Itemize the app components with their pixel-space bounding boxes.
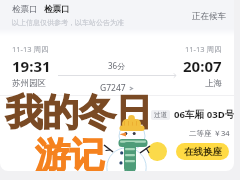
staticText: 06车厢 03D号 — [174, 108, 234, 121]
staticText: 正在候车 — [192, 11, 226, 22]
staticText: G7247 — [100, 82, 126, 94]
staticText: 上海 — [205, 78, 222, 89]
staticText: 19:31 — [12, 56, 51, 76]
staticText: 以上信息仅供参考，以车站公告为准 — [12, 18, 124, 27]
staticText: 游记 — [35, 133, 105, 171]
button[interactable]: 我的冬日游记 活动 — [0, 96, 234, 171]
staticText: 检票口 — [44, 4, 70, 15]
staticText: 20:07 — [183, 56, 222, 76]
staticText: 36分 — [108, 60, 126, 71]
button[interactable]: G7247 — [100, 82, 134, 94]
staticText: 我的冬日 — [6, 89, 152, 136]
staticText: 检票口 — [12, 4, 38, 15]
staticText: 11-13 周四 — [185, 44, 222, 54]
staticText: 11-13 周四 — [12, 44, 49, 54]
staticText: 在线换座 — [184, 146, 222, 158]
staticText: 过道 — [154, 111, 167, 119]
button[interactable]: 在线换座 — [176, 143, 229, 160]
staticText: 二等座 ￥34 — [189, 128, 230, 138]
staticText: 苏州园区 — [12, 78, 46, 89]
